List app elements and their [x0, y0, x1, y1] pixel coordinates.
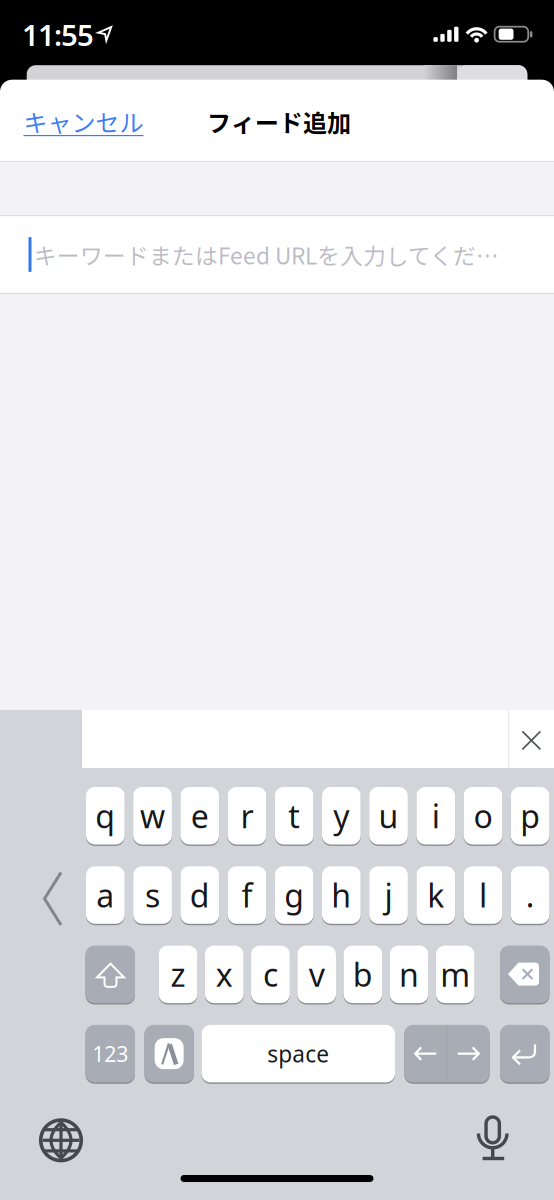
staticText: b	[353, 953, 373, 996]
staticText: n	[399, 953, 419, 996]
button[interactable]: t	[275, 787, 313, 844]
staticText: s	[145, 874, 160, 916]
staticText: i	[432, 794, 440, 837]
button[interactable]: u	[369, 787, 408, 844]
button[interactable]: Delete	[500, 946, 549, 1003]
staticText: j	[385, 874, 393, 916]
button[interactable]: Next keyboard	[37, 1116, 85, 1164]
staticText: a	[96, 874, 114, 916]
button[interactable]: a	[86, 866, 125, 924]
staticText: y	[333, 794, 349, 837]
button[interactable]: c	[251, 946, 290, 1003]
button[interactable]: p	[511, 787, 549, 844]
staticText: m	[440, 953, 470, 996]
button[interactable]: i	[416, 787, 455, 844]
button[interactable]: Search or Feed URL text field	[0, 216, 554, 293]
staticText: l	[479, 874, 487, 916]
staticText: d	[190, 874, 210, 916]
button[interactable]: o	[464, 787, 502, 844]
staticText: k	[427, 874, 444, 916]
button[interactable]: Shift	[85, 946, 135, 1003]
button[interactable]: y	[322, 787, 361, 844]
button[interactable]: n	[390, 946, 428, 1003]
button[interactable]: v	[297, 946, 336, 1003]
button[interactable]: r	[228, 787, 266, 844]
button[interactable]: Switch keyboard	[144, 1025, 194, 1082]
staticText: r	[240, 794, 253, 837]
button[interactable]: Close candidates	[509, 710, 554, 768]
button[interactable]: Move cursor	[404, 1025, 490, 1082]
staticText: v	[309, 953, 325, 996]
staticText: x	[216, 953, 233, 996]
staticText: 123	[92, 1039, 128, 1068]
staticText: o	[473, 794, 492, 837]
button[interactable]: キャンセル	[23, 104, 143, 139]
button[interactable]: Expand keyboard	[32, 869, 72, 929]
staticText: u	[379, 794, 399, 837]
button[interactable]: j	[369, 866, 408, 924]
button[interactable]: b	[343, 946, 382, 1003]
staticText: h	[331, 874, 351, 916]
button[interactable]: k	[416, 866, 455, 924]
button[interactable]: .	[511, 866, 549, 924]
staticText: フィード追加	[207, 104, 351, 139]
button[interactable]: s	[133, 866, 172, 924]
staticText: c	[263, 953, 278, 996]
staticText: g	[284, 874, 304, 916]
button[interactable]: e	[180, 787, 219, 844]
button[interactable]: Dictation	[469, 1111, 517, 1165]
button[interactable]: m	[436, 946, 475, 1003]
button[interactable]: d	[180, 866, 219, 924]
staticText: z	[170, 953, 185, 996]
button[interactable]: g	[275, 866, 313, 924]
button[interactable]: l	[464, 866, 502, 924]
staticText: w	[140, 794, 165, 837]
button[interactable]: z	[159, 946, 197, 1003]
staticText: q	[95, 794, 115, 837]
staticText: f	[241, 874, 252, 916]
staticText: キャンセル	[23, 104, 143, 139]
staticText: .	[526, 874, 535, 916]
staticText: キーワードまたはFeed URLを入力してくだ…	[34, 238, 499, 271]
button[interactable]: x	[205, 946, 244, 1003]
button[interactable]: Numbers	[85, 1025, 135, 1082]
button[interactable]: w	[133, 787, 172, 844]
staticText: 11:55	[22, 15, 94, 54]
button[interactable]: Return	[500, 1025, 549, 1082]
staticText: space	[267, 1039, 329, 1069]
staticText: p	[520, 794, 540, 837]
staticText: t	[288, 794, 300, 837]
staticText: e	[191, 794, 209, 837]
button[interactable]: h	[322, 866, 361, 924]
button[interactable]: space	[201, 1025, 395, 1082]
button[interactable]: q	[86, 787, 125, 844]
button[interactable]: f	[228, 866, 266, 924]
